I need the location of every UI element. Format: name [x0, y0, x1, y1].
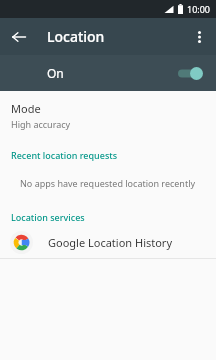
- button[interactable]: Back: [5, 23, 33, 51]
- staticText: On: [47, 65, 64, 81]
- button[interactable]: Google Location History: [0, 226, 216, 258]
- staticText: No apps have requested location recently: [20, 177, 196, 189]
- button[interactable]: Mode: [0, 91, 216, 138]
- staticText: Google Location History: [48, 235, 173, 250]
- staticText: High accuracy: [11, 118, 71, 130]
- staticText: 10:00: [187, 3, 211, 15]
- staticText: Location: [47, 27, 105, 46]
- button[interactable]: More options: [185, 23, 213, 51]
- button[interactable]: On: [0, 55, 216, 91]
- staticText: Recent location requests: [11, 149, 118, 161]
- staticText: Location services: [11, 211, 85, 223]
- staticText: Mode: [11, 101, 41, 116]
